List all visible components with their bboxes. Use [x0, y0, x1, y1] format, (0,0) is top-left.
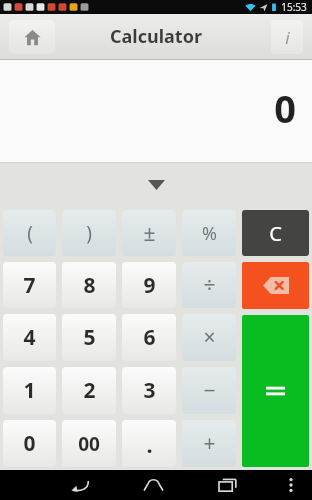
staticText: 0: [274, 82, 296, 134]
staticText: 2: [83, 376, 96, 405]
staticText: ÷: [203, 271, 216, 300]
button[interactable]: 2: [62, 367, 116, 414]
button[interactable]: Equals: [242, 315, 309, 467]
button[interactable]: ÷: [182, 262, 236, 308]
staticText: %: [202, 221, 217, 246]
button[interactable]: Recents: [207, 470, 247, 500]
staticText: ×: [203, 323, 216, 352]
staticText: ): [86, 220, 92, 246]
button[interactable]: Back: [60, 470, 100, 500]
staticText: 7: [23, 271, 36, 300]
staticText: −: [203, 376, 216, 405]
button[interactable]: Home: [9, 20, 55, 54]
staticText: Calculator: [110, 24, 202, 49]
button[interactable]: ×: [182, 314, 236, 361]
staticText: (: [27, 220, 33, 246]
staticText: .: [146, 429, 153, 459]
button[interactable]: 4: [3, 314, 56, 361]
button[interactable]: Backspace: [242, 262, 309, 309]
button[interactable]: 9: [122, 262, 176, 308]
staticText: 8: [83, 271, 96, 300]
button[interactable]: 3: [122, 367, 176, 414]
button[interactable]: Info: [271, 20, 303, 54]
button[interactable]: %: [182, 210, 236, 256]
staticText: 00: [78, 431, 100, 457]
staticText: ±: [143, 219, 156, 248]
button[interactable]: 6: [122, 314, 176, 361]
staticText: i: [285, 26, 290, 49]
staticText: 0: [23, 429, 36, 458]
staticText: +: [203, 429, 216, 458]
staticText: 1: [23, 376, 36, 405]
staticText: 9: [143, 271, 156, 300]
staticText: 6: [143, 323, 156, 352]
staticText: 4: [23, 323, 36, 352]
button[interactable]: (: [3, 210, 56, 256]
staticText: 5: [83, 323, 96, 352]
staticText: 15:53: [281, 0, 307, 14]
button[interactable]: C: [242, 210, 309, 256]
button[interactable]: 0: [3, 420, 56, 467]
button[interactable]: .: [122, 420, 176, 467]
button[interactable]: More options: [280, 470, 302, 500]
button[interactable]: ): [62, 210, 116, 256]
button[interactable]: 5: [62, 314, 116, 361]
staticText: 3: [143, 376, 156, 405]
button[interactable]: +: [182, 420, 236, 467]
button[interactable]: −: [182, 367, 236, 414]
button[interactable]: 8: [62, 262, 116, 308]
button[interactable]: 00: [62, 420, 116, 467]
button[interactable]: Expand history: [0, 163, 312, 207]
button[interactable]: Home: [133, 470, 173, 500]
button[interactable]: 7: [3, 262, 56, 308]
button[interactable]: 1: [3, 367, 56, 414]
staticText: C: [269, 220, 282, 247]
button[interactable]: ±: [122, 210, 176, 256]
